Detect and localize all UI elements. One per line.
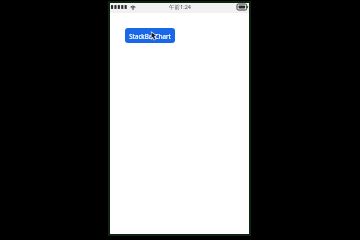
staticText: StackBarChart [129, 32, 171, 40]
button[interactable]: StackBarChart [125, 28, 175, 43]
staticText: 午前1:24 [169, 3, 191, 11]
